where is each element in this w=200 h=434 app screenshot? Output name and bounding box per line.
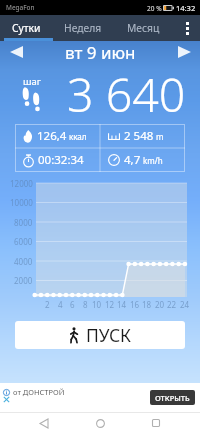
staticText: 14 xyxy=(117,299,127,310)
staticText: от ДОНСТРОЙ xyxy=(13,387,65,397)
button[interactable]: Previous day xyxy=(5,41,27,62)
staticText: 24 xyxy=(180,299,190,310)
staticText: 8 xyxy=(83,299,88,310)
staticText: 6000 xyxy=(14,236,33,246)
button[interactable]: ОТКРЫТЬ xyxy=(150,390,195,405)
staticText: 20 xyxy=(155,299,165,310)
button[interactable]: Next day xyxy=(173,41,195,62)
staticText: 10 xyxy=(92,299,102,310)
staticText: Неделя xyxy=(64,21,102,35)
staticText: 20 % xyxy=(147,4,162,13)
staticText: шаг xyxy=(23,75,41,88)
button[interactable]: Месяц xyxy=(119,15,168,41)
staticText: ОТКРЫТЬ xyxy=(155,393,190,403)
staticText: 3 640 xyxy=(67,62,186,118)
staticText: 4 xyxy=(58,299,63,310)
staticText: 2000 xyxy=(14,275,33,285)
staticText: ПУСК xyxy=(86,323,132,347)
button[interactable]: Сутки xyxy=(2,15,51,41)
staticText: 8000 xyxy=(14,217,33,227)
button[interactable]: Home xyxy=(88,412,112,434)
staticText: 126,4 xyxy=(37,128,67,144)
staticText: 10000 xyxy=(10,197,33,207)
staticText: 22 xyxy=(167,299,177,310)
staticText: вт 9 июн xyxy=(65,41,136,62)
staticText: 00:32:34 xyxy=(38,152,84,168)
staticText: Месяц xyxy=(127,21,160,35)
staticText: Сутки xyxy=(12,21,41,35)
staticText: ккал xyxy=(69,131,87,142)
staticText: 12 xyxy=(105,299,115,310)
staticText: km/h xyxy=(143,155,163,166)
staticText: 14:32 xyxy=(176,3,196,13)
button[interactable]: ПУСК xyxy=(15,321,185,349)
staticText: MegaFon xyxy=(6,3,35,12)
staticText: 2 548 xyxy=(124,128,154,144)
staticText: 6 xyxy=(70,299,75,310)
button[interactable]: More options xyxy=(174,15,200,41)
staticText: 18 xyxy=(142,299,152,310)
staticText: 4000 xyxy=(14,256,33,266)
staticText: 4,7 xyxy=(124,152,141,168)
staticText: 12000 xyxy=(10,178,33,188)
staticText: m xyxy=(156,131,164,142)
button[interactable]: Recent apps xyxy=(144,412,168,434)
staticText: 16 xyxy=(130,299,140,310)
staticText: 2 xyxy=(45,299,50,310)
button[interactable]: Неделя xyxy=(58,15,107,41)
button[interactable]: Back xyxy=(32,412,56,434)
